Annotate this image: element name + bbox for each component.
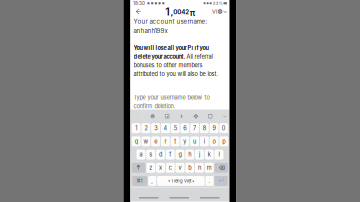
button[interactable]: s xyxy=(146,150,155,159)
staticText: g xyxy=(178,151,181,158)
button[interactable]: g xyxy=(176,150,184,159)
button[interactable]: 0 xyxy=(219,123,228,133)
button[interactable]: 6 xyxy=(180,123,189,133)
button[interactable]: e xyxy=(151,136,160,146)
button[interactable]: , xyxy=(148,176,156,186)
button[interactable]: b xyxy=(185,163,194,173)
staticText: anhanh199x xyxy=(133,27,167,34)
staticText: ↵ xyxy=(218,177,224,184)
button[interactable]: Keyboard tool 3 xyxy=(160,109,174,123)
staticText: d xyxy=(159,151,162,158)
staticText: , xyxy=(151,178,153,184)
button[interactable]: r xyxy=(161,136,170,146)
staticText: ⌫ xyxy=(218,164,224,171)
button[interactable]: Keyboard tool 4 xyxy=(174,109,189,123)
button[interactable]: 7 xyxy=(190,123,199,133)
staticText: c xyxy=(169,164,172,171)
staticText: 1, xyxy=(165,5,173,18)
button[interactable]: u xyxy=(190,136,199,146)
staticText: x xyxy=(159,164,162,171)
staticText: r xyxy=(164,138,166,145)
button[interactable]: 1 xyxy=(132,123,141,133)
staticText: n xyxy=(198,164,201,171)
button[interactable]: Keyboard tool 6 xyxy=(203,109,217,123)
staticText: 3 xyxy=(154,125,157,132)
button[interactable]: Change language xyxy=(211,6,227,16)
button[interactable]: k xyxy=(205,150,214,159)
button[interactable]: Keyboard tool 5 xyxy=(189,109,203,123)
button[interactable]: m xyxy=(205,163,214,173)
staticText: VI xyxy=(212,8,217,15)
staticText: j xyxy=(199,151,200,158)
staticText: i xyxy=(204,138,205,145)
button[interactable]: !#1 xyxy=(132,176,147,186)
staticText: • Tiếng Việt • xyxy=(168,178,194,184)
staticText: t xyxy=(174,138,176,145)
button[interactable]: i xyxy=(200,136,209,146)
button[interactable]: w xyxy=(141,136,150,146)
staticText: Type your username below to confirm dele… xyxy=(133,94,209,110)
button[interactable]: d xyxy=(156,150,165,159)
button[interactable]: Back xyxy=(132,6,144,16)
staticText: 6 xyxy=(183,125,186,132)
button[interactable]: . xyxy=(205,176,214,186)
button[interactable]: Home xyxy=(164,195,194,200)
staticText: 1 xyxy=(135,125,137,132)
staticText: l xyxy=(218,151,219,158)
button[interactable]: q xyxy=(132,136,141,146)
staticText: 33% xyxy=(213,1,223,6)
button[interactable]: o xyxy=(210,136,218,146)
staticText: z xyxy=(149,164,152,171)
button[interactable]: a xyxy=(137,150,145,159)
button[interactable]: Recents xyxy=(194,195,225,200)
staticText: o xyxy=(213,138,216,145)
button[interactable]: ⌫ xyxy=(214,163,228,173)
button[interactable]: Keyboard tool 2 xyxy=(145,109,160,123)
staticText: π xyxy=(190,7,196,18)
button[interactable]: z xyxy=(146,163,155,173)
staticText: 9 xyxy=(213,125,216,132)
button[interactable]: f xyxy=(166,150,175,159)
button[interactable]: v xyxy=(176,163,184,173)
button[interactable]: Back xyxy=(133,195,164,200)
staticText: u xyxy=(193,138,196,145)
button[interactable]: l xyxy=(214,150,223,159)
staticText: y xyxy=(183,138,186,145)
button[interactable]: n xyxy=(195,163,204,173)
button[interactable]: Keyboard tool 7 xyxy=(217,109,232,123)
staticText: s xyxy=(149,151,152,158)
staticText: You will lose all your Pi if you delete … xyxy=(133,45,218,77)
staticText: 0042 xyxy=(173,8,189,16)
button[interactable]: y xyxy=(180,136,189,146)
staticText: 2 xyxy=(144,125,147,132)
staticText: 5 xyxy=(174,125,177,132)
staticText: 4 xyxy=(163,125,167,132)
button[interactable]: 2 xyxy=(141,123,150,133)
staticText: ↑ xyxy=(136,164,141,171)
staticText: b xyxy=(188,164,191,171)
staticText: Your account username: xyxy=(133,18,207,25)
button[interactable]: 5 xyxy=(171,123,180,133)
staticText: . xyxy=(209,178,211,184)
button[interactable]: 8 xyxy=(200,123,209,133)
staticText: a xyxy=(139,151,142,158)
button[interactable]: x xyxy=(156,163,165,173)
staticText: e xyxy=(154,138,157,145)
button[interactable]: • Tiếng Việt • xyxy=(157,176,205,186)
staticText: k xyxy=(208,151,211,158)
button[interactable]: j xyxy=(195,150,204,159)
button[interactable]: p xyxy=(219,136,228,146)
staticText: 8 xyxy=(203,125,206,132)
button[interactable]: h xyxy=(185,150,194,159)
button[interactable]: t xyxy=(171,136,180,146)
staticText: 7 xyxy=(193,125,196,132)
button[interactable]: 9 xyxy=(210,123,218,133)
button[interactable]: 3 xyxy=(151,123,160,133)
button[interactable]: c xyxy=(166,163,175,173)
button[interactable]: 4 xyxy=(161,123,170,133)
staticText: h xyxy=(188,151,191,158)
button[interactable]: ↑ xyxy=(132,163,145,173)
button[interactable]: ↵ xyxy=(214,176,228,186)
staticText: w xyxy=(143,138,148,145)
